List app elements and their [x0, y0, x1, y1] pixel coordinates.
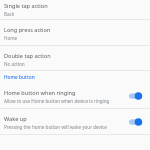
button[interactable]: Long press action [0, 20, 150, 45]
button[interactable]: Double tap action [0, 46, 150, 70]
staticText: Double tap action [4, 52, 51, 60]
button[interactable]: Single tap action [0, 0, 150, 19]
staticText: No action [4, 61, 25, 67]
staticText: Pressing the home button will wake your … [4, 124, 107, 130]
button[interactable]: Wake up [129, 117, 145, 127]
staticText: Home button when ringing [4, 89, 76, 97]
staticText: Wake up [4, 115, 27, 123]
staticText: Back [4, 11, 15, 17]
staticText: Long press action [4, 26, 51, 34]
staticText: Allow to use Home button when device is … [4, 98, 110, 104]
staticText: Single tap action [4, 2, 48, 10]
staticText: Home button [4, 74, 35, 81]
button[interactable]: Home button when ringing [0, 83, 150, 108]
staticText: Home [4, 35, 18, 41]
button[interactable]: Wake up [0, 109, 150, 134]
button[interactable]: Home button when ringing [129, 91, 145, 101]
